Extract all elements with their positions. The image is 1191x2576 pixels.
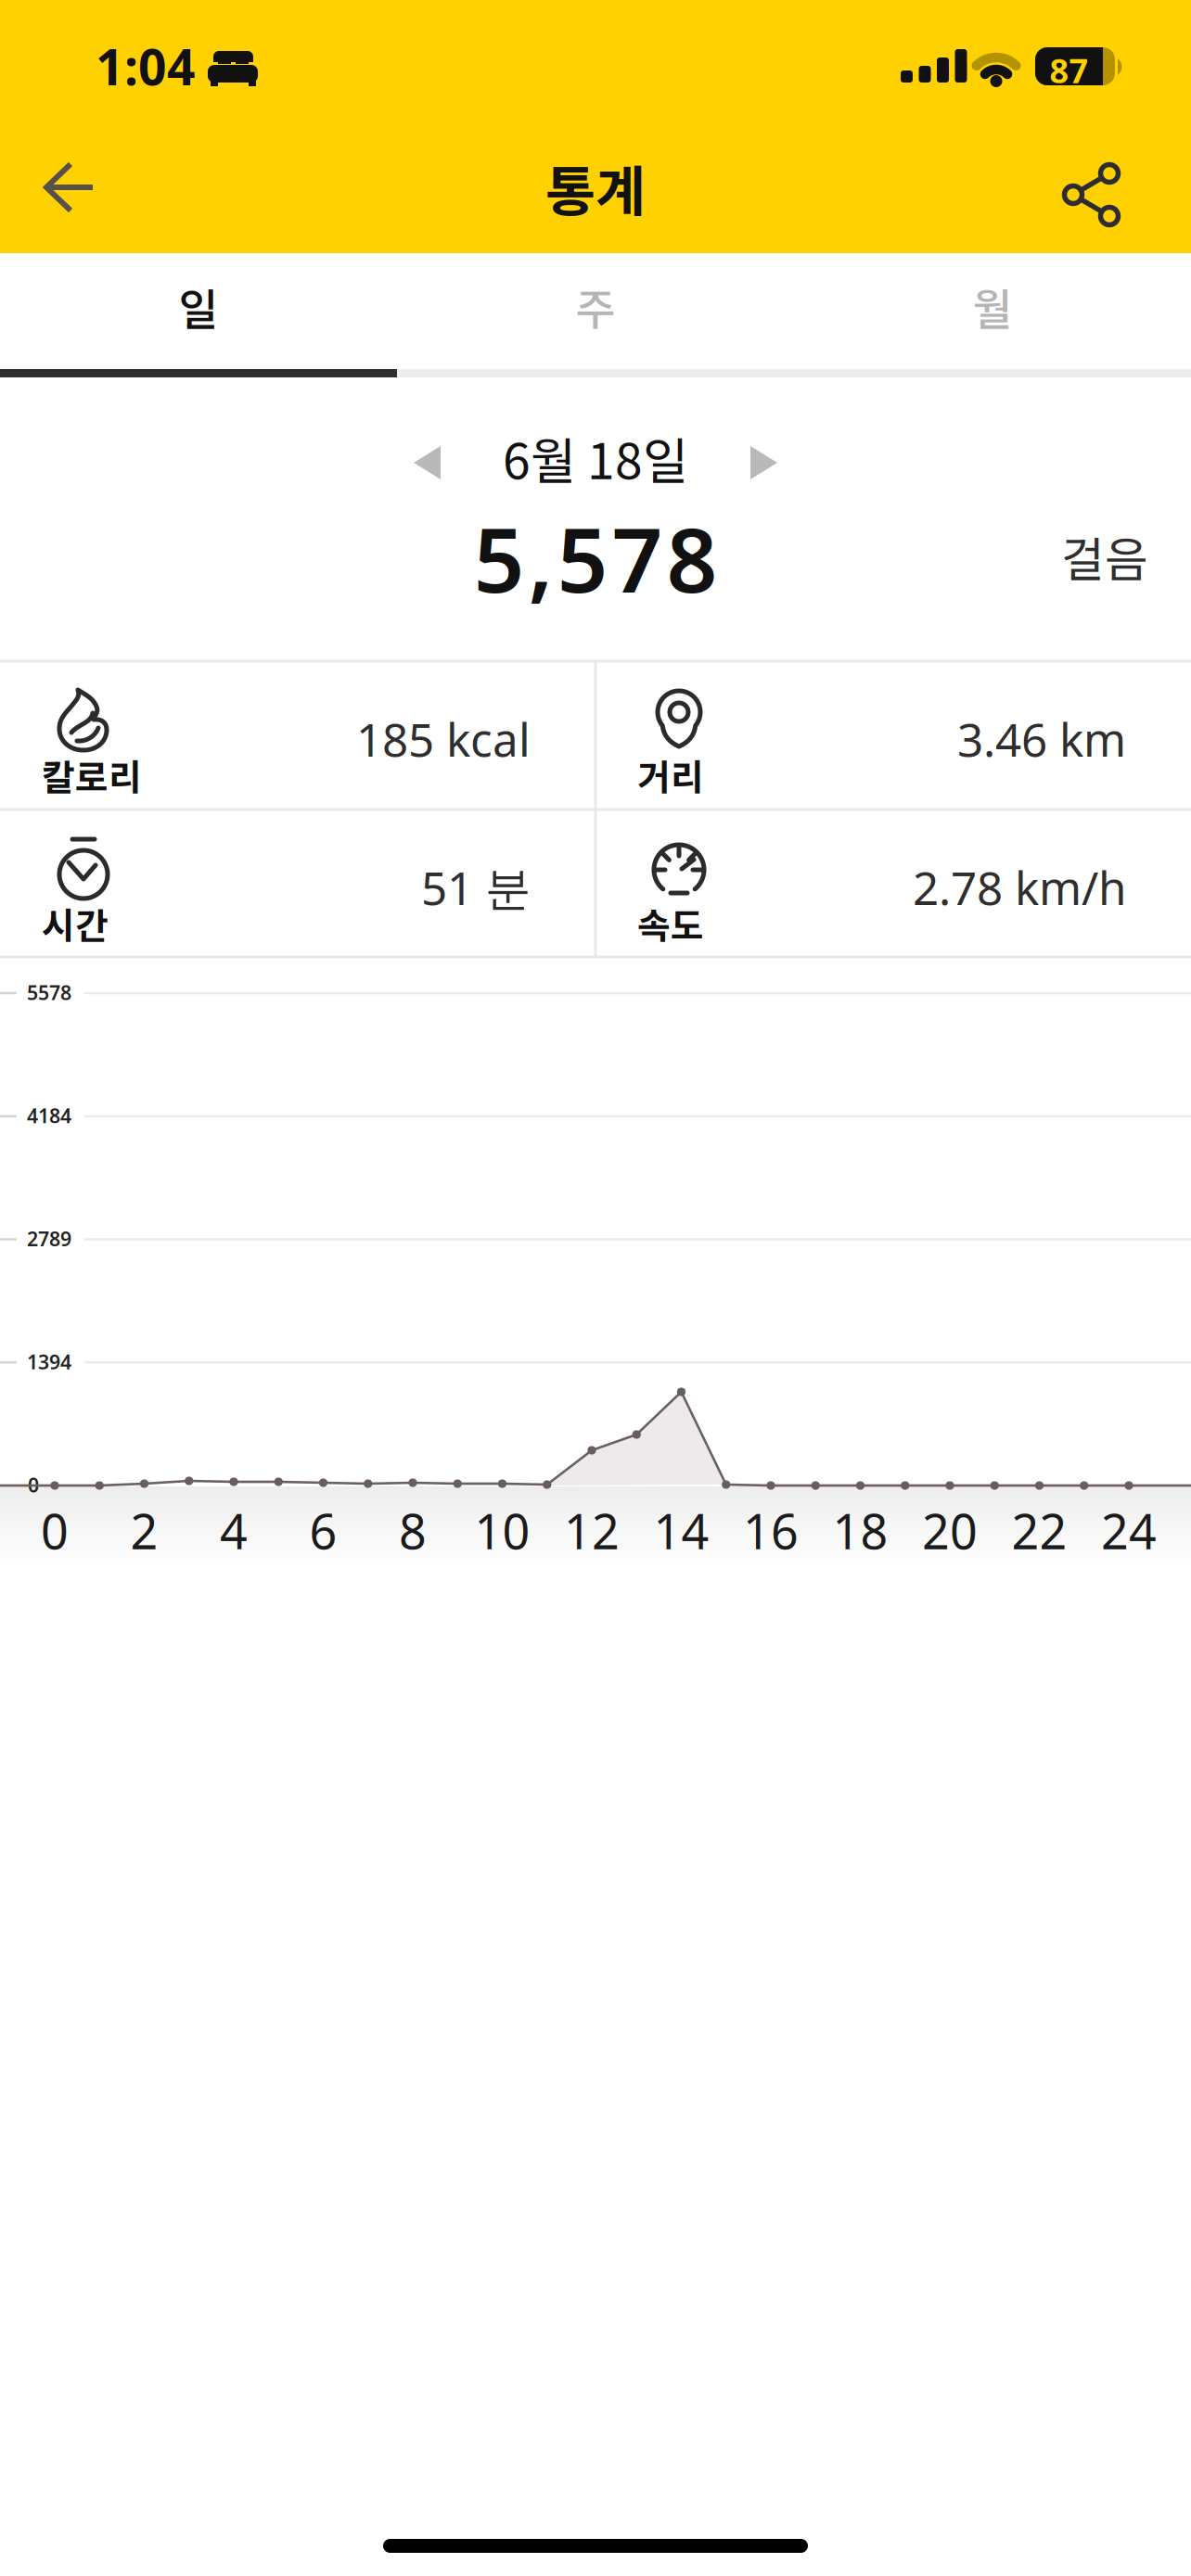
- button[interactable]: Back: [19, 143, 108, 232]
- staticText: 24: [1101, 1498, 1157, 1563]
- staticText: 속도: [637, 898, 704, 950]
- staticText: 16: [743, 1498, 799, 1563]
- staticText: 12: [564, 1498, 620, 1563]
- staticText: 통계: [545, 148, 646, 227]
- staticText: 6월 18일: [503, 422, 688, 494]
- staticText: 3.46 km: [957, 708, 1126, 769]
- staticText: 거리: [637, 749, 704, 801]
- staticText: 2789: [27, 1225, 71, 1252]
- staticText: 22: [1012, 1498, 1067, 1563]
- staticText: 0: [28, 1472, 39, 1498]
- staticText: 51 분: [421, 857, 531, 918]
- staticText: 0: [41, 1498, 69, 1563]
- staticText: 4184: [27, 1102, 71, 1129]
- staticText: 8: [399, 1498, 427, 1563]
- staticText: 1394: [27, 1348, 71, 1375]
- staticText: 6: [309, 1498, 337, 1563]
- staticText: 2.78 km/h: [913, 857, 1126, 918]
- staticText: 칼로리: [42, 749, 142, 801]
- button[interactable]: Share: [1043, 145, 1135, 237]
- staticText: 20: [922, 1498, 978, 1563]
- staticText: 주: [576, 275, 615, 338]
- button[interactable]: Next day: [727, 426, 801, 500]
- staticText: 걸음: [1061, 522, 1148, 590]
- button[interactable]: Previous day: [390, 426, 464, 500]
- button[interactable]: 일: [0, 249, 397, 364]
- staticText: 14: [653, 1498, 709, 1563]
- staticText: 87: [1050, 48, 1089, 93]
- staticText: 10: [474, 1498, 530, 1563]
- staticText: 1:04: [96, 33, 196, 99]
- button[interactable]: 월: [794, 249, 1191, 364]
- staticText: 시간: [42, 898, 109, 950]
- staticText: 2: [130, 1498, 158, 1563]
- staticText: 5578: [27, 979, 71, 1005]
- staticText: 185 kcal: [356, 708, 531, 769]
- staticText: 5,578: [474, 499, 717, 617]
- staticText: 18: [832, 1498, 888, 1563]
- staticText: 일: [179, 275, 218, 338]
- staticText: 4: [220, 1498, 248, 1563]
- staticText: 월: [973, 275, 1012, 338]
- button[interactable]: 주: [397, 249, 794, 364]
